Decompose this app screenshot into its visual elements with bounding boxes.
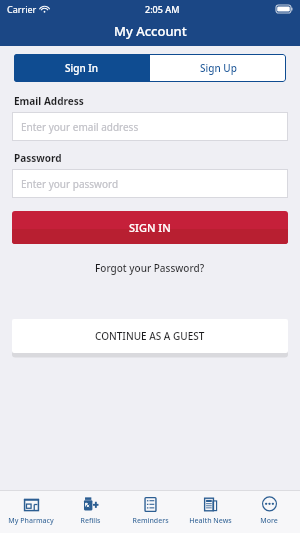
button[interactable]: Enter your email address	[12, 112, 288, 141]
staticText: My Account	[114, 22, 187, 40]
staticText: Password	[14, 151, 62, 165]
staticText: Health News	[189, 516, 232, 526]
button[interactable]: More	[240, 494, 298, 526]
staticText: Enter your email address	[21, 120, 139, 134]
button[interactable]: My Pharmacy	[2, 494, 60, 526]
button[interactable]: CONTINUE AS A GUEST	[12, 319, 288, 353]
staticText: SIGN IN	[129, 220, 171, 235]
button[interactable]: Forgot your Password?	[89, 258, 211, 278]
staticText: 2:05 AM	[145, 3, 180, 15]
button[interactable]: Reminders	[121, 494, 179, 526]
staticText: My Pharmacy	[8, 516, 54, 526]
staticText: Enter your password	[21, 177, 119, 191]
staticText: Sign Up	[200, 61, 237, 75]
staticText: Email Address	[14, 94, 84, 108]
button[interactable]: Sign In	[14, 54, 150, 82]
button[interactable]: SIGN IN	[12, 211, 288, 244]
staticText: Sign In	[65, 61, 99, 75]
button[interactable]: Health News	[181, 494, 239, 526]
staticText: Reminders	[132, 516, 169, 526]
staticText: CONTINUE AS A GUEST	[95, 329, 205, 343]
button[interactable]: Enter your password	[12, 169, 288, 198]
button[interactable]: Sign Up	[150, 54, 286, 82]
staticText: Forgot your Password?	[95, 261, 205, 275]
staticText: Carrier	[7, 3, 37, 15]
staticText: More	[260, 516, 278, 526]
button[interactable]: Refills	[61, 494, 119, 526]
staticText: Refills	[80, 516, 101, 526]
